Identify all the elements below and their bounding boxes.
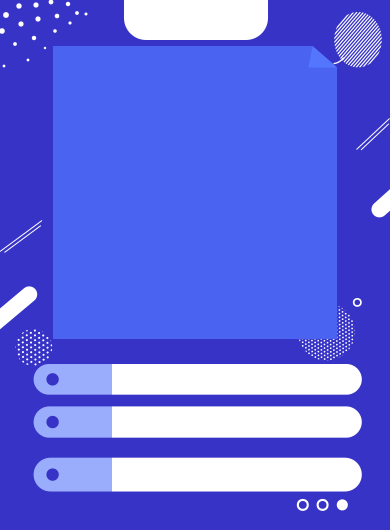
button[interactable]: Page 3, current [337,499,348,510]
button[interactable]: Option one [34,364,362,395]
button[interactable]: Option two [34,406,362,438]
button[interactable]: Option three [34,458,362,491]
button[interactable]: Page 2 [318,500,328,510]
button[interactable]: Page 1 [298,500,308,510]
button[interactable]: Title card [124,0,268,40]
